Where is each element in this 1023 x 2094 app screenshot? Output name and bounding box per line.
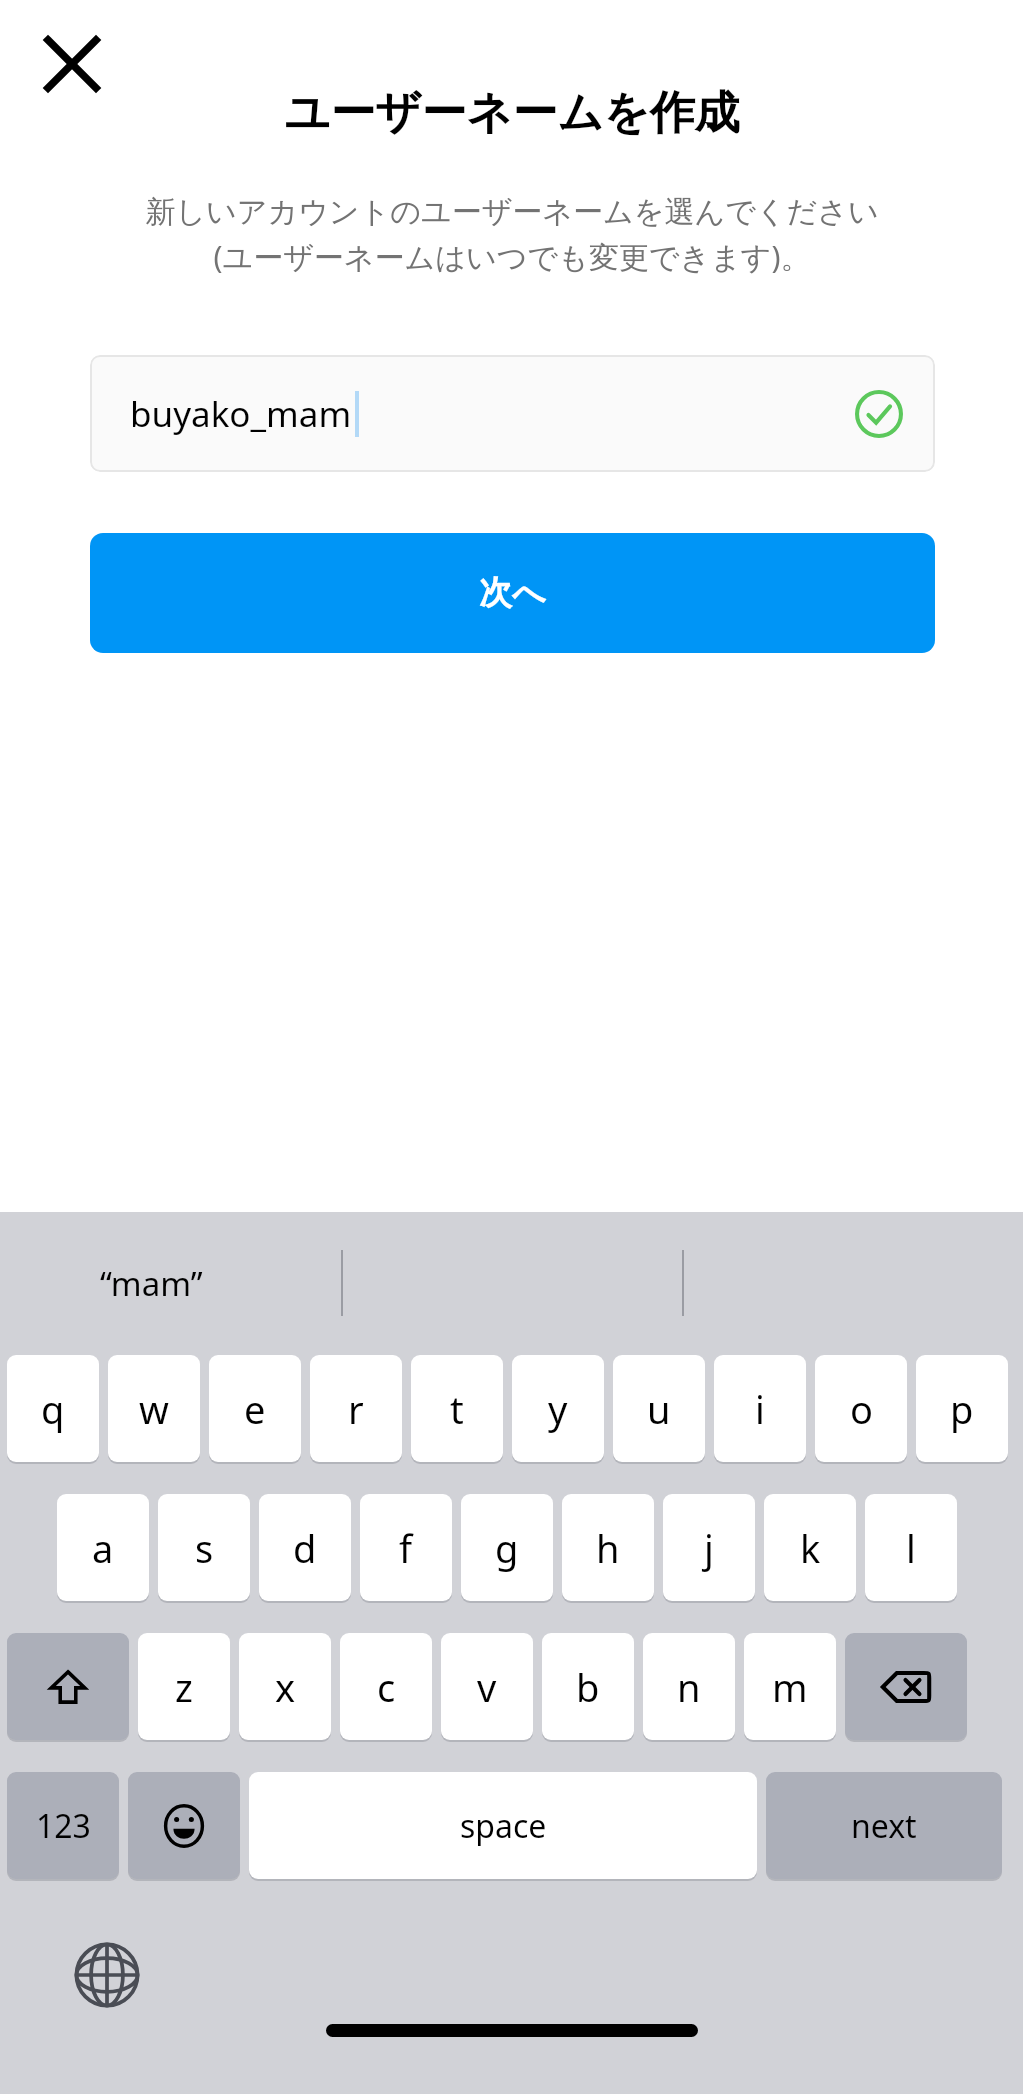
- button[interactable]: Shift: [7, 1633, 129, 1740]
- staticText: a: [92, 1522, 114, 1574]
- button[interactable]: i: [714, 1355, 806, 1462]
- button[interactable]: k: [764, 1494, 856, 1601]
- button[interactable]: 123: [7, 1772, 119, 1879]
- button[interactable]: c: [340, 1633, 432, 1740]
- button[interactable]: t: [411, 1355, 503, 1462]
- staticText: i: [755, 1383, 765, 1435]
- staticText: j: [704, 1522, 714, 1574]
- button[interactable]: Close: [26, 18, 118, 110]
- staticText: x: [275, 1661, 296, 1713]
- staticText: space: [460, 1804, 547, 1848]
- staticText: f: [399, 1522, 413, 1574]
- staticText: p: [950, 1383, 974, 1435]
- staticText: buyako_mam: [130, 390, 352, 438]
- button[interactable]: y: [512, 1355, 604, 1462]
- button[interactable]: g: [461, 1494, 553, 1601]
- staticText: b: [576, 1661, 600, 1713]
- button[interactable]: s: [158, 1494, 250, 1601]
- button[interactable]: n: [643, 1633, 735, 1740]
- staticText: next: [851, 1804, 917, 1848]
- button[interactable]: u: [613, 1355, 705, 1462]
- staticText: q: [41, 1383, 65, 1435]
- staticText: k: [800, 1522, 821, 1574]
- button[interactable]: o: [815, 1355, 907, 1462]
- staticText: h: [596, 1522, 620, 1574]
- button[interactable]: a: [57, 1494, 149, 1601]
- button[interactable]: m: [744, 1633, 836, 1740]
- staticText: t: [450, 1383, 464, 1435]
- staticText: d: [293, 1522, 317, 1574]
- button[interactable]: e: [209, 1355, 301, 1462]
- button[interactable]: d: [259, 1494, 351, 1601]
- staticText: w: [139, 1383, 169, 1435]
- button[interactable]: r: [310, 1355, 402, 1462]
- staticText: n: [677, 1661, 701, 1713]
- staticText: u: [647, 1383, 671, 1435]
- staticText: o: [850, 1383, 873, 1435]
- staticText: e: [244, 1383, 266, 1435]
- button[interactable]: Switch keyboard language: [62, 1930, 152, 2020]
- button[interactable]: p: [916, 1355, 1008, 1462]
- staticText: l: [906, 1522, 916, 1574]
- staticText: m: [772, 1661, 808, 1713]
- button[interactable]: w: [108, 1355, 200, 1462]
- button[interactable]: z: [138, 1633, 230, 1740]
- staticText: ユーザーネームを作成: [284, 85, 740, 142]
- staticText: r: [348, 1383, 364, 1435]
- staticText: c: [377, 1661, 396, 1713]
- staticText: g: [495, 1522, 519, 1574]
- staticText: s: [195, 1522, 214, 1574]
- button[interactable]: b: [542, 1633, 634, 1740]
- button[interactable]: j: [663, 1494, 755, 1601]
- button[interactable]: q: [7, 1355, 99, 1462]
- staticText: y: [548, 1383, 568, 1435]
- button[interactable]: Emoji: [128, 1772, 240, 1879]
- button[interactable]: h: [562, 1494, 654, 1601]
- button[interactable]: x: [239, 1633, 331, 1740]
- staticText: 新しいアカウントのユーザーネームを選んでください (ユーザーネームはいつでも変更…: [145, 193, 879, 276]
- button[interactable]: f: [360, 1494, 452, 1601]
- staticText: 次へ: [479, 572, 546, 614]
- button[interactable]: next: [766, 1772, 1002, 1879]
- staticText: 123: [36, 1804, 91, 1848]
- staticText: “mam”: [100, 1261, 203, 1306]
- button[interactable]: Backspace: [845, 1633, 967, 1740]
- button[interactable]: l: [865, 1494, 957, 1601]
- button[interactable]: space: [249, 1772, 757, 1879]
- button[interactable]: v: [441, 1633, 533, 1740]
- button[interactable]: 次へ: [90, 533, 935, 653]
- button[interactable]: buyako_mam: [90, 355, 935, 472]
- staticText: v: [477, 1661, 497, 1713]
- staticText: z: [175, 1661, 193, 1713]
